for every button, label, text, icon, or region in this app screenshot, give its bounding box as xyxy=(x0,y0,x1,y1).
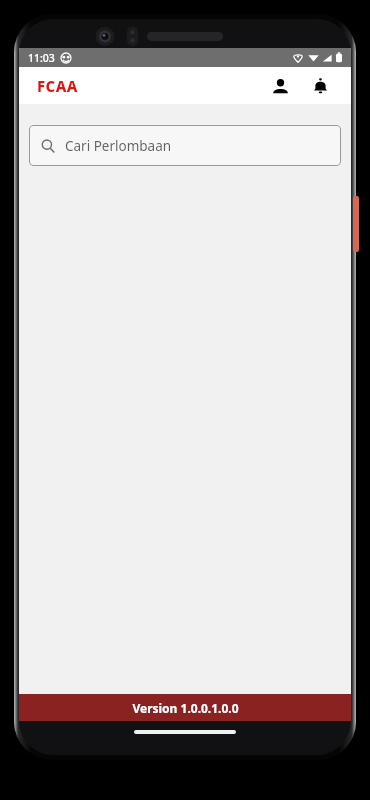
staticText: 11:03 xyxy=(28,51,55,65)
button[interactable]: Version 1.0.0.1.0.0 xyxy=(19,694,351,721)
button[interactable]: Notifications xyxy=(303,69,337,103)
button[interactable]: Cari Perlombaan xyxy=(29,125,341,166)
staticText: Version 1.0.0.1.0.0 xyxy=(132,700,239,716)
button[interactable]: Profile xyxy=(263,69,297,103)
button[interactable]: FCAA xyxy=(37,76,78,96)
staticText: Cari Perlombaan xyxy=(65,137,172,155)
